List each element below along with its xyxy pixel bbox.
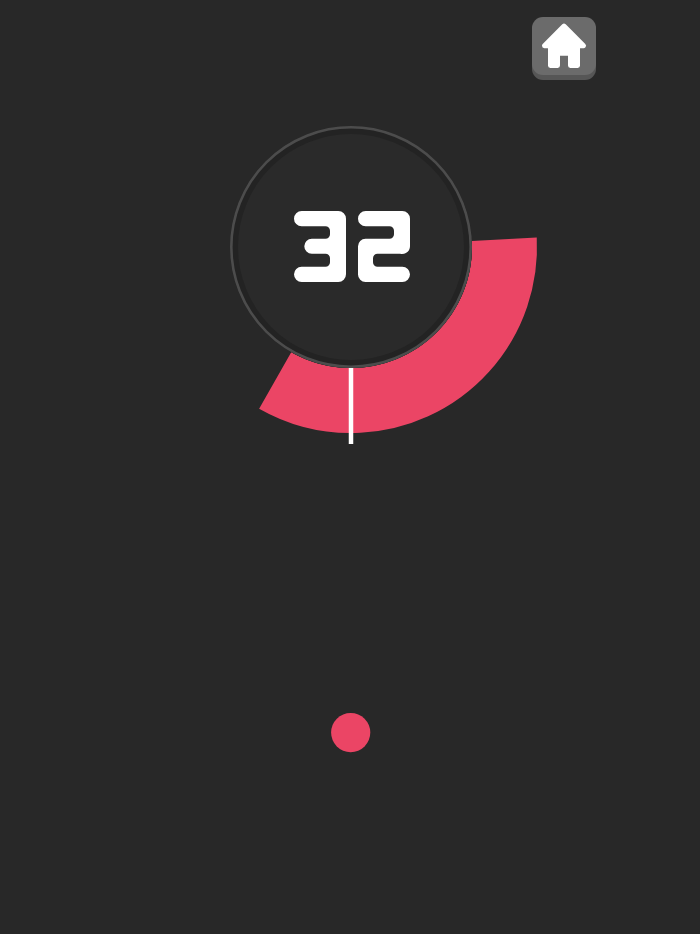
button[interactable]: Home (532, 17, 596, 75)
button[interactable]: Tap to switch direction (0, 0, 700, 934)
